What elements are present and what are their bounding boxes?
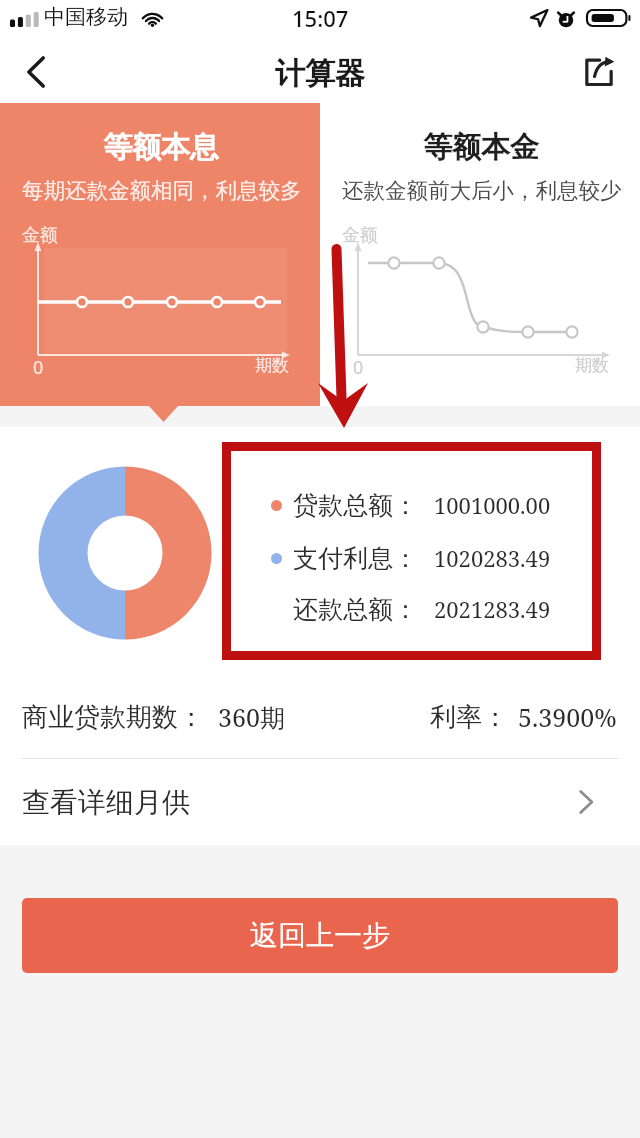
staticText: 每期还款金额相同，利息较多 [22, 177, 302, 204]
staticText: 商业贷款期数： [22, 701, 204, 734]
staticText: 计算器 [275, 55, 365, 93]
button[interactable]: 等额本息 [0, 103, 320, 406]
staticText: 返回上一步 [250, 918, 390, 953]
staticText: 1020283.49 [434, 543, 551, 573]
staticText: 0 [353, 355, 364, 380]
button[interactable]: 商业贷款期数： [0, 676, 640, 758]
button[interactable]: Back [0, 45, 72, 103]
staticText: 金额 [22, 224, 58, 247]
staticText: 金额 [342, 224, 378, 247]
staticText: 360期 [218, 700, 285, 734]
staticText: 查看详细月供 [22, 785, 190, 820]
staticText: 期数 [575, 355, 609, 376]
staticText: 0 [33, 355, 44, 380]
staticText: 中国移动 [44, 4, 128, 30]
staticText: 期数 [255, 355, 289, 376]
staticText: 等额本金 [423, 129, 539, 166]
button[interactable]: 返回上一步 [22, 898, 618, 973]
staticText: 15:07 [292, 3, 349, 33]
staticText: 2021283.49 [434, 594, 551, 624]
staticText: 还款金额前大后小，利息较少 [342, 177, 622, 204]
staticText: 贷款总额： [293, 490, 418, 521]
staticText: 利率： [430, 701, 508, 734]
button[interactable]: 等额本金 [320, 103, 640, 406]
button[interactable]: Share [556, 45, 640, 103]
staticText: 等额本息 [103, 129, 219, 166]
staticText: 1001000.00 [434, 490, 551, 520]
button[interactable]: 查看详细月供 [0, 759, 640, 845]
staticText: 还款总额： [293, 594, 418, 625]
staticText: 支付利息： [293, 543, 418, 574]
staticText: 5.3900% [518, 700, 617, 734]
